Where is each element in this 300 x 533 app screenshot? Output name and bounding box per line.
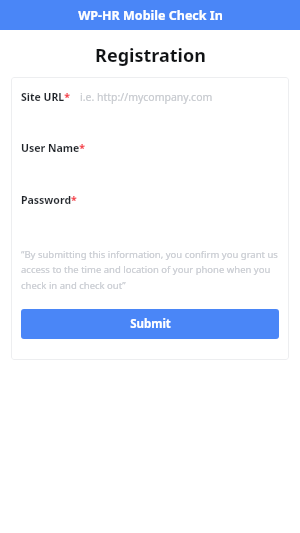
- staticText: Submit: [130, 316, 171, 332]
- staticText: User Name*: [21, 141, 85, 155]
- button[interactable]: Submit: [21, 309, 279, 339]
- staticText: Registration: [95, 43, 206, 68]
- staticText: Password*: [21, 193, 77, 207]
- staticText: Site URL*: [21, 90, 70, 104]
- button[interactable]: Site URL*: [21, 90, 279, 104]
- button[interactable]: User Name*: [21, 141, 279, 155]
- button[interactable]: Password*: [21, 193, 279, 207]
- staticText: i.e. http://mycompany.com: [80, 90, 213, 104]
- staticText: “By submitting this information, you con…: [21, 248, 279, 292]
- staticText: WP-HR Mobile Check In: [78, 7, 223, 24]
